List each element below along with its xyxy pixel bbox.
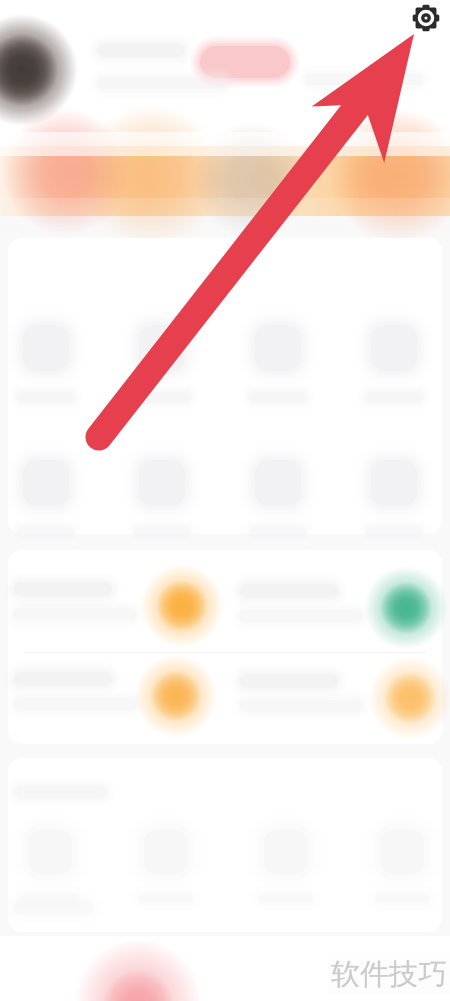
staticText: 软件技巧 [331, 956, 447, 993]
button[interactable]: Settings [409, 1, 443, 35]
